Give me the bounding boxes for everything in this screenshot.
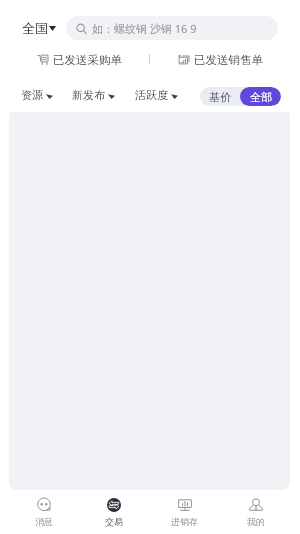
button[interactable]: Trade [79,490,149,534]
button[interactable]: 已发送销售单 [150,47,291,72]
staticText: 我的 [247,516,265,527]
button[interactable]: Messages [9,490,79,534]
staticText: 新发布 [72,88,105,102]
staticText: 如：螺纹钢 沙钢 16 9 [92,21,197,36]
button[interactable]: 全国 [16,16,62,40]
button[interactable]: Profile [220,490,291,534]
staticText: 进销存 [171,516,198,527]
button[interactable]: 新发布 [72,88,115,102]
button[interactable]: 活跃度 [135,88,178,102]
staticText: 消息 [35,516,53,527]
staticText: 全部 [250,90,272,104]
staticText: 已发送销售单 [194,53,263,67]
button[interactable]: 如：螺纹钢 沙钢 16 9 [66,16,278,40]
button[interactable]: 资源 [21,88,53,102]
staticText: 资源 [21,88,43,102]
button[interactable]: Inventory [149,490,220,534]
staticText: 全国 [22,20,48,36]
button[interactable]: 基价 [200,87,240,106]
staticText: 基价 [209,90,231,104]
button[interactable]: 已发送采购单 [9,47,149,72]
staticText: 已发送采购单 [53,53,122,67]
staticText: 交易 [105,516,123,527]
button[interactable]: 全部 [240,87,281,106]
staticText: 活跃度 [135,88,168,102]
